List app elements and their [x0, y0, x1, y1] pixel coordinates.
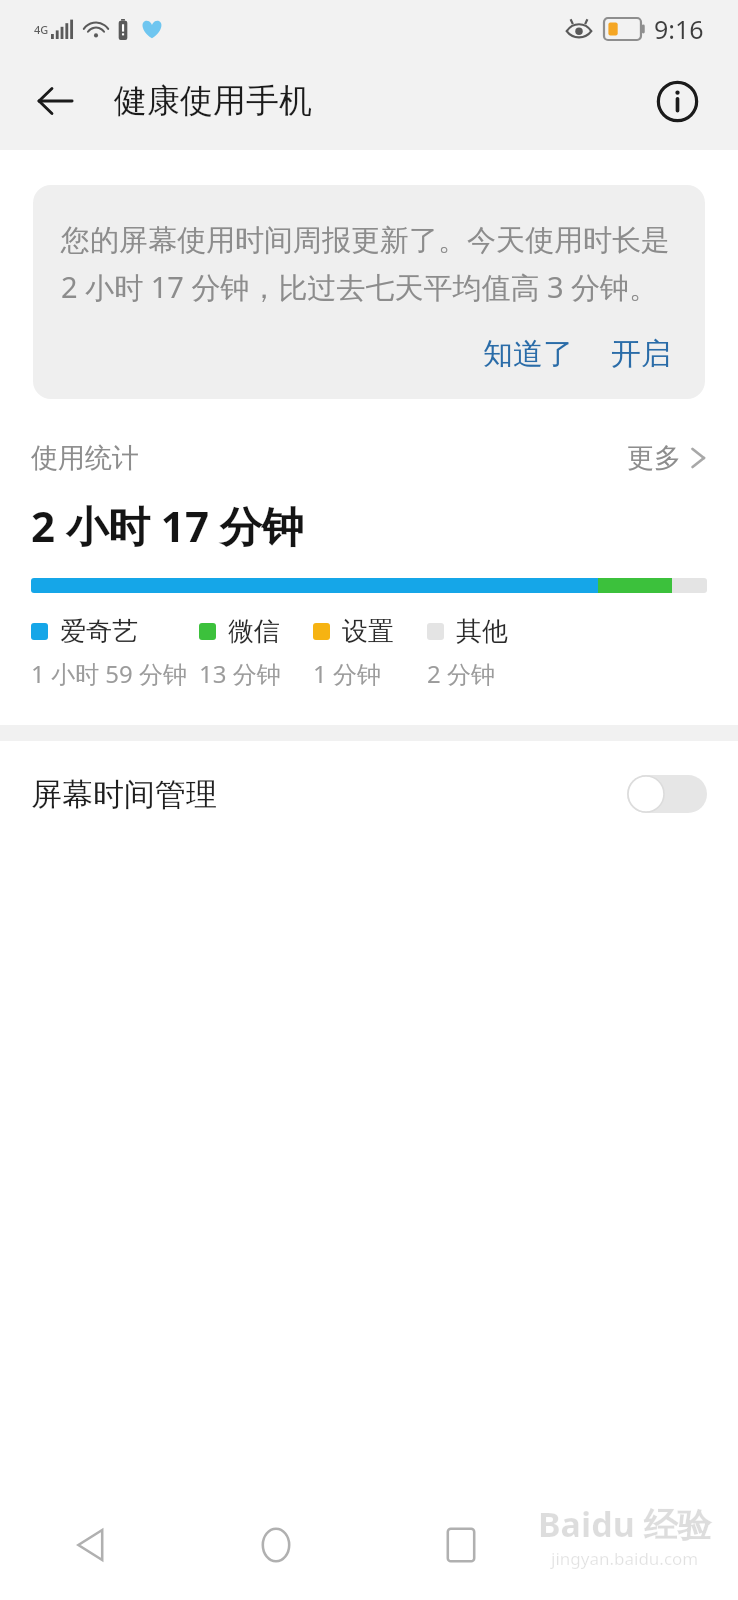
staticText: 健康使用手机 [114, 80, 312, 122]
button[interactable]: 最近任务 [368, 1490, 553, 1600]
button[interactable]: 主页 [184, 1490, 368, 1600]
button[interactable]: 返回 [0, 1490, 184, 1600]
button[interactable]: 屏幕时间管理 [0, 741, 738, 847]
button[interactable]: 您的屏幕使用时间周报更新了。今天使用时长是 2 小时 17 分钟，比过去七天平均… [33, 185, 705, 399]
button[interactable]: 屏幕时间管理开关 [627, 775, 707, 813]
staticText: jingyan.baidu.com [551, 1547, 699, 1570]
button[interactable]: 爱奇艺 [31, 615, 199, 690]
button[interactable]: 使用统计 [31, 441, 707, 475]
button[interactable]: 说明 [647, 71, 707, 131]
staticText: 更多 [627, 441, 681, 475]
staticText: 开启 [611, 335, 671, 373]
staticText: 2 分钟 [427, 657, 495, 690]
button[interactable]: 微信 [199, 615, 313, 690]
staticText: 使用统计 [31, 441, 139, 475]
button[interactable]: 知道了 [477, 331, 579, 377]
button[interactable]: 返回 [18, 64, 92, 138]
staticText: 1 分钟 [313, 657, 381, 690]
staticText: 您的屏幕使用时间周报更新了。今天使用时长是 2 小时 17 分钟，比过去七天平均… [61, 219, 677, 307]
staticText: 4G [34, 22, 49, 37]
staticText: 微信 [228, 615, 280, 648]
button[interactable]: 开启 [605, 331, 677, 377]
staticText: 其他 [456, 615, 508, 648]
staticText: 13 分钟 [199, 657, 281, 690]
staticText: 爱奇艺 [60, 615, 138, 648]
button[interactable]: 设置 [313, 615, 427, 690]
staticText: 屏幕时间管理 [31, 775, 217, 814]
staticText: 知道了 [483, 335, 573, 373]
staticText: 2 小时 17 分钟 [31, 497, 304, 554]
staticText: 设置 [342, 615, 394, 648]
staticText: 1 小时 59 分钟 [31, 657, 187, 690]
staticText: 9:16 [654, 12, 704, 46]
staticText: Baidu 经验 [538, 1501, 712, 1547]
button[interactable]: 其他 [427, 615, 541, 690]
